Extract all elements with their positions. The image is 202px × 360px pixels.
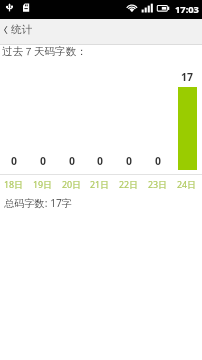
staticText: 18日	[4, 178, 24, 190]
staticText: 23日	[148, 178, 168, 190]
staticText: 0	[126, 154, 133, 168]
staticText: 17	[181, 70, 194, 84]
staticText: 0	[40, 154, 47, 168]
staticText: 24日	[177, 178, 197, 190]
staticText: 0	[97, 154, 104, 168]
staticText: 19日	[33, 178, 53, 190]
staticText: 0	[11, 154, 18, 168]
staticText: 22日	[119, 178, 139, 190]
button[interactable]: Back	[0, 19, 40, 44]
button[interactable]	[0, 19, 202, 44]
staticText: 17:03	[175, 3, 199, 16]
staticText: 总码字数: 17字	[4, 196, 72, 210]
staticText: 过去７天码字数：	[2, 45, 87, 58]
staticText: 20日	[62, 178, 82, 190]
staticText: 0	[155, 154, 162, 168]
staticText: 21日	[90, 178, 110, 190]
staticText: 统计	[11, 23, 33, 36]
staticText: 0	[69, 154, 76, 168]
